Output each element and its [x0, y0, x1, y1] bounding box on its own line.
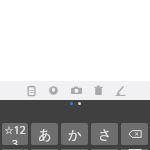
- button[interactable]: Voice input: [46, 83, 61, 98]
- button[interactable]: あ: [31, 123, 58, 145]
- button[interactable]: Backspace: [121, 123, 148, 145]
- button[interactable]: Space: [121, 149, 148, 150]
- button[interactable]: Clipboard: [24, 83, 39, 98]
- staticText: か: [68, 126, 82, 142]
- button[interactable]: Camera: [69, 83, 84, 98]
- button[interactable]: さ: [91, 123, 118, 145]
- button[interactable]: か: [61, 123, 88, 145]
- button[interactable]: Delete: [91, 83, 106, 98]
- staticText: ☆123: [2, 123, 28, 145]
- staticText: さ: [98, 126, 112, 142]
- button[interactable]: ☆123: [2, 123, 28, 145]
- staticText: あ: [38, 126, 52, 142]
- button[interactable]: Handwriting: [113, 83, 128, 98]
